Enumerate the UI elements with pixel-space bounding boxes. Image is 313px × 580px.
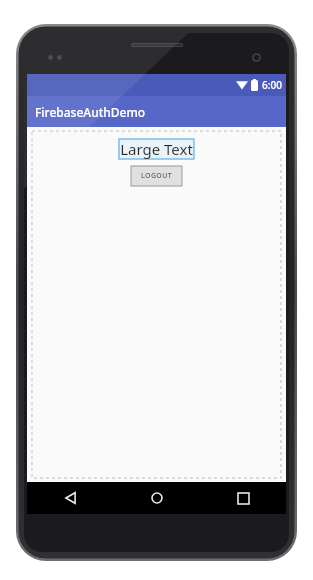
button[interactable]: Recent apps [200, 482, 286, 514]
staticText: 6:00 [262, 78, 282, 92]
button[interactable]: Large Text [119, 139, 194, 159]
staticText: FirebaseAuthDemo [35, 104, 146, 120]
button[interactable]: Home [114, 482, 200, 514]
staticText: LOGOUT [141, 171, 173, 181]
button[interactable]: LOGOUT [131, 166, 182, 186]
staticText: Large Text [120, 139, 193, 159]
button[interactable]: Back [27, 482, 114, 514]
